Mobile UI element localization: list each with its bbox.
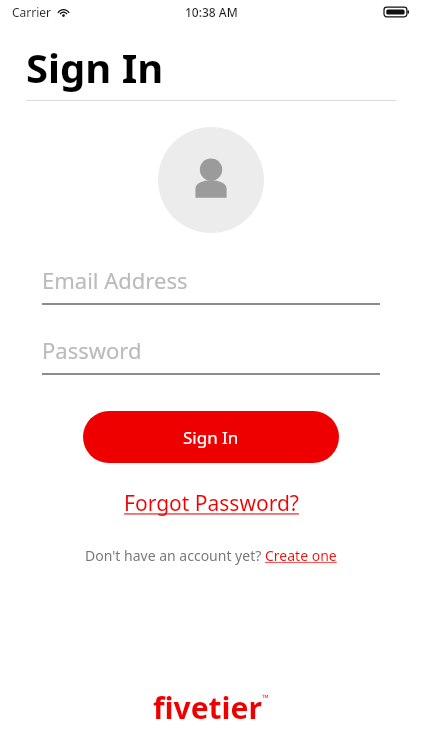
button[interactable]: Sign In [83,411,339,463]
staticText: Carrier [12,4,52,20]
button[interactable]: Create one [265,546,337,565]
staticText: ™ [262,691,269,703]
button[interactable]: Profile photo [158,127,264,233]
staticText: 10:38 AM [185,4,238,20]
staticText: Forgot Password? [124,489,299,518]
button[interactable]: Password [42,335,380,375]
staticText: Don't have an account yet? [85,546,265,565]
staticText: Email Address [42,265,188,295]
staticText: fivetier [153,687,262,728]
button[interactable]: Email Address [42,265,380,305]
staticText: Password [42,335,142,365]
button[interactable]: Forgot Password? [116,487,307,520]
staticText: Create one [265,546,337,565]
staticText: Sign In [183,426,239,449]
staticText: Sign In [26,40,164,94]
